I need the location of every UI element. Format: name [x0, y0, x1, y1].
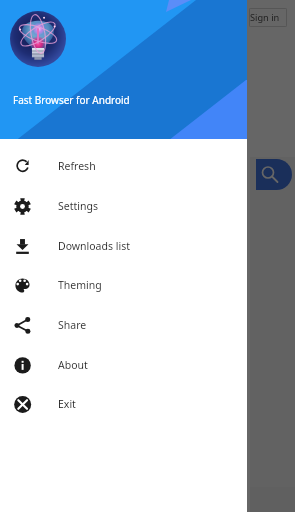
staticText: Theming: [58, 278, 102, 292]
staticText: Refresh: [58, 159, 96, 173]
staticText: Exit: [58, 397, 76, 411]
button[interactable]: Sign in: [249, 8, 287, 27]
staticText: Settings: [58, 199, 98, 213]
button[interactable]: About: [0, 345, 247, 385]
button[interactable]: Exit: [0, 384, 247, 424]
staticText: Fast Browser for Android: [13, 93, 130, 107]
staticText: Sign in: [250, 11, 280, 24]
button[interactable]: Refresh: [0, 146, 247, 186]
staticText: About: [58, 358, 88, 372]
button[interactable]: Share: [0, 305, 247, 345]
button[interactable]: Search: [256, 159, 292, 190]
staticText: Share: [58, 318, 87, 332]
button[interactable]: Settings: [0, 186, 247, 226]
button[interactable]: Theming: [0, 265, 247, 305]
button[interactable]: Downloads list: [0, 226, 247, 266]
staticText: Downloads list: [58, 239, 130, 253]
